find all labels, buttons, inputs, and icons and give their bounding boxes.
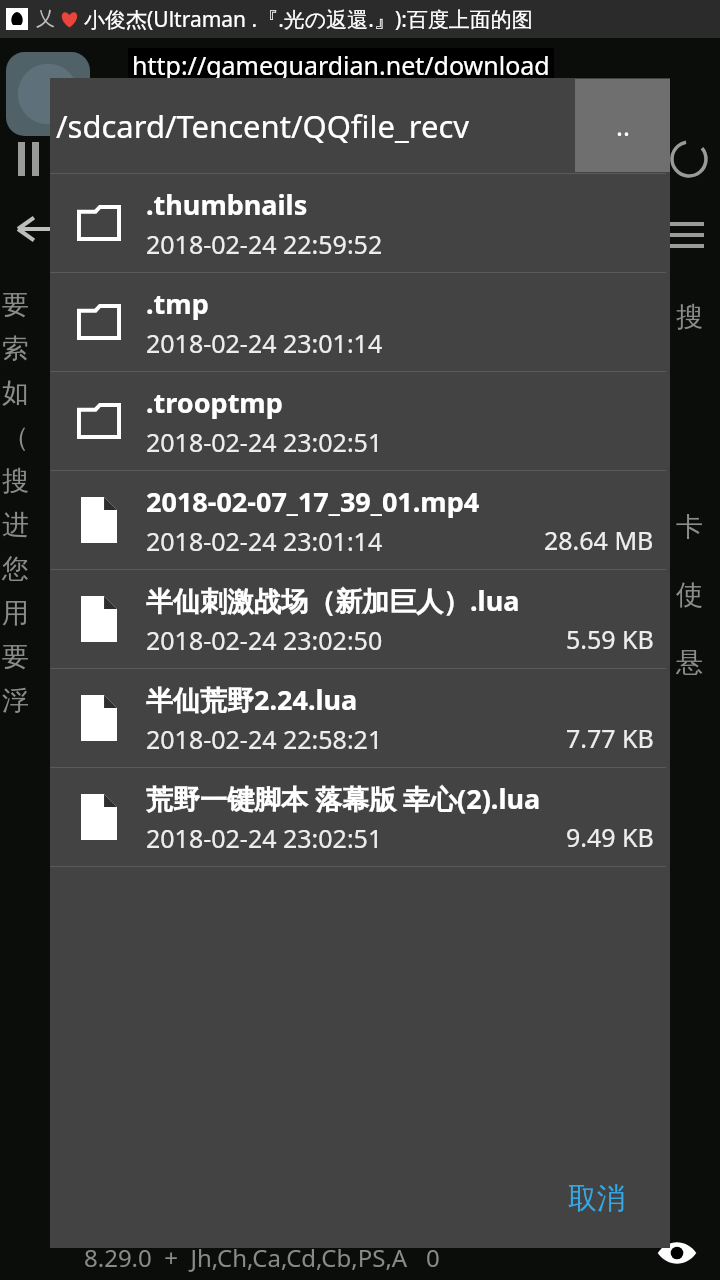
staticText: 要 xyxy=(2,640,29,674)
staticText: 搜 xyxy=(2,464,29,498)
staticText: 卡 xyxy=(676,510,703,544)
staticText: 2018-02-24 23:01:14 xyxy=(146,524,383,558)
staticText: .tmp xyxy=(146,285,209,322)
staticText: 2018-02-07_17_39_01.mp4 xyxy=(146,483,480,520)
staticText: 小俊杰(Ultraman .『.光の返還.』):百度上面的图 xyxy=(84,5,533,34)
staticText: 2018-02-24 23:02:51 xyxy=(146,821,383,855)
staticText: 8.29.0 + Jh,Ch,Ca,Cd,Cb,PS,A 0 xyxy=(84,1241,440,1274)
staticText: /sdcard/Tencent/QQfile_recv xyxy=(56,105,470,147)
button[interactable]: 半仙荒野2.24.lua xyxy=(50,669,670,767)
button[interactable]: .trooptmp xyxy=(50,372,670,470)
staticText: 5.59 KB xyxy=(566,622,654,656)
staticText: 索 xyxy=(2,332,29,366)
staticText: （ xyxy=(2,420,29,454)
staticText: 28.64 MB xyxy=(544,523,654,557)
staticText: 如 xyxy=(2,376,29,410)
button[interactable]: 荒野一键脚本 落幕版 幸心(2).lua xyxy=(50,768,670,866)
staticText: 进 xyxy=(2,508,29,542)
staticText: 2018-02-24 22:58:21 xyxy=(146,722,383,756)
staticText: 取消 xyxy=(568,1180,626,1217)
button[interactable]: Parent directory xyxy=(575,79,670,172)
staticText: 荒野一键脚本 落幕版 幸心(2).lua xyxy=(146,780,541,817)
staticText: 您 xyxy=(2,552,29,586)
staticText: 7.77 KB xyxy=(566,721,654,755)
staticText: 9.49 KB xyxy=(566,820,654,854)
staticText: 用 xyxy=(2,596,29,630)
staticText: http://gameguardian.net/download xyxy=(132,48,550,82)
button[interactable]: 取消 xyxy=(558,1172,636,1225)
staticText: 浮 xyxy=(2,684,29,718)
button[interactable]: 2018-02-07_17_39_01.mp4 xyxy=(50,471,670,569)
button[interactable]: Visibility xyxy=(656,1232,698,1274)
staticText: 使 xyxy=(676,578,703,612)
staticText: 要 xyxy=(2,288,29,322)
staticText: 悬 xyxy=(676,646,703,680)
staticText: .thumbnails xyxy=(146,186,308,223)
button[interactable]: .thumbnails xyxy=(50,174,670,272)
button[interactable]: 半仙刺激战场（新加巨人）.lua xyxy=(50,570,670,668)
staticText: 搜 xyxy=(676,300,703,334)
staticText: 2018-02-24 23:01:14 xyxy=(146,326,383,360)
staticText: 半仙荒野2.24.lua xyxy=(146,681,358,718)
staticText: 2018-02-24 23:02:51 xyxy=(146,425,383,459)
staticText: 乂 xyxy=(36,7,55,31)
staticText: .trooptmp xyxy=(146,384,283,421)
staticText: 2018-02-24 22:59:52 xyxy=(146,227,383,261)
staticText: 2018-02-24 23:02:50 xyxy=(146,623,383,657)
staticText: 半仙刺激战场（新加巨人）.lua xyxy=(146,582,520,619)
button[interactable]: .tmp xyxy=(50,273,670,371)
staticText: .. xyxy=(616,108,630,143)
